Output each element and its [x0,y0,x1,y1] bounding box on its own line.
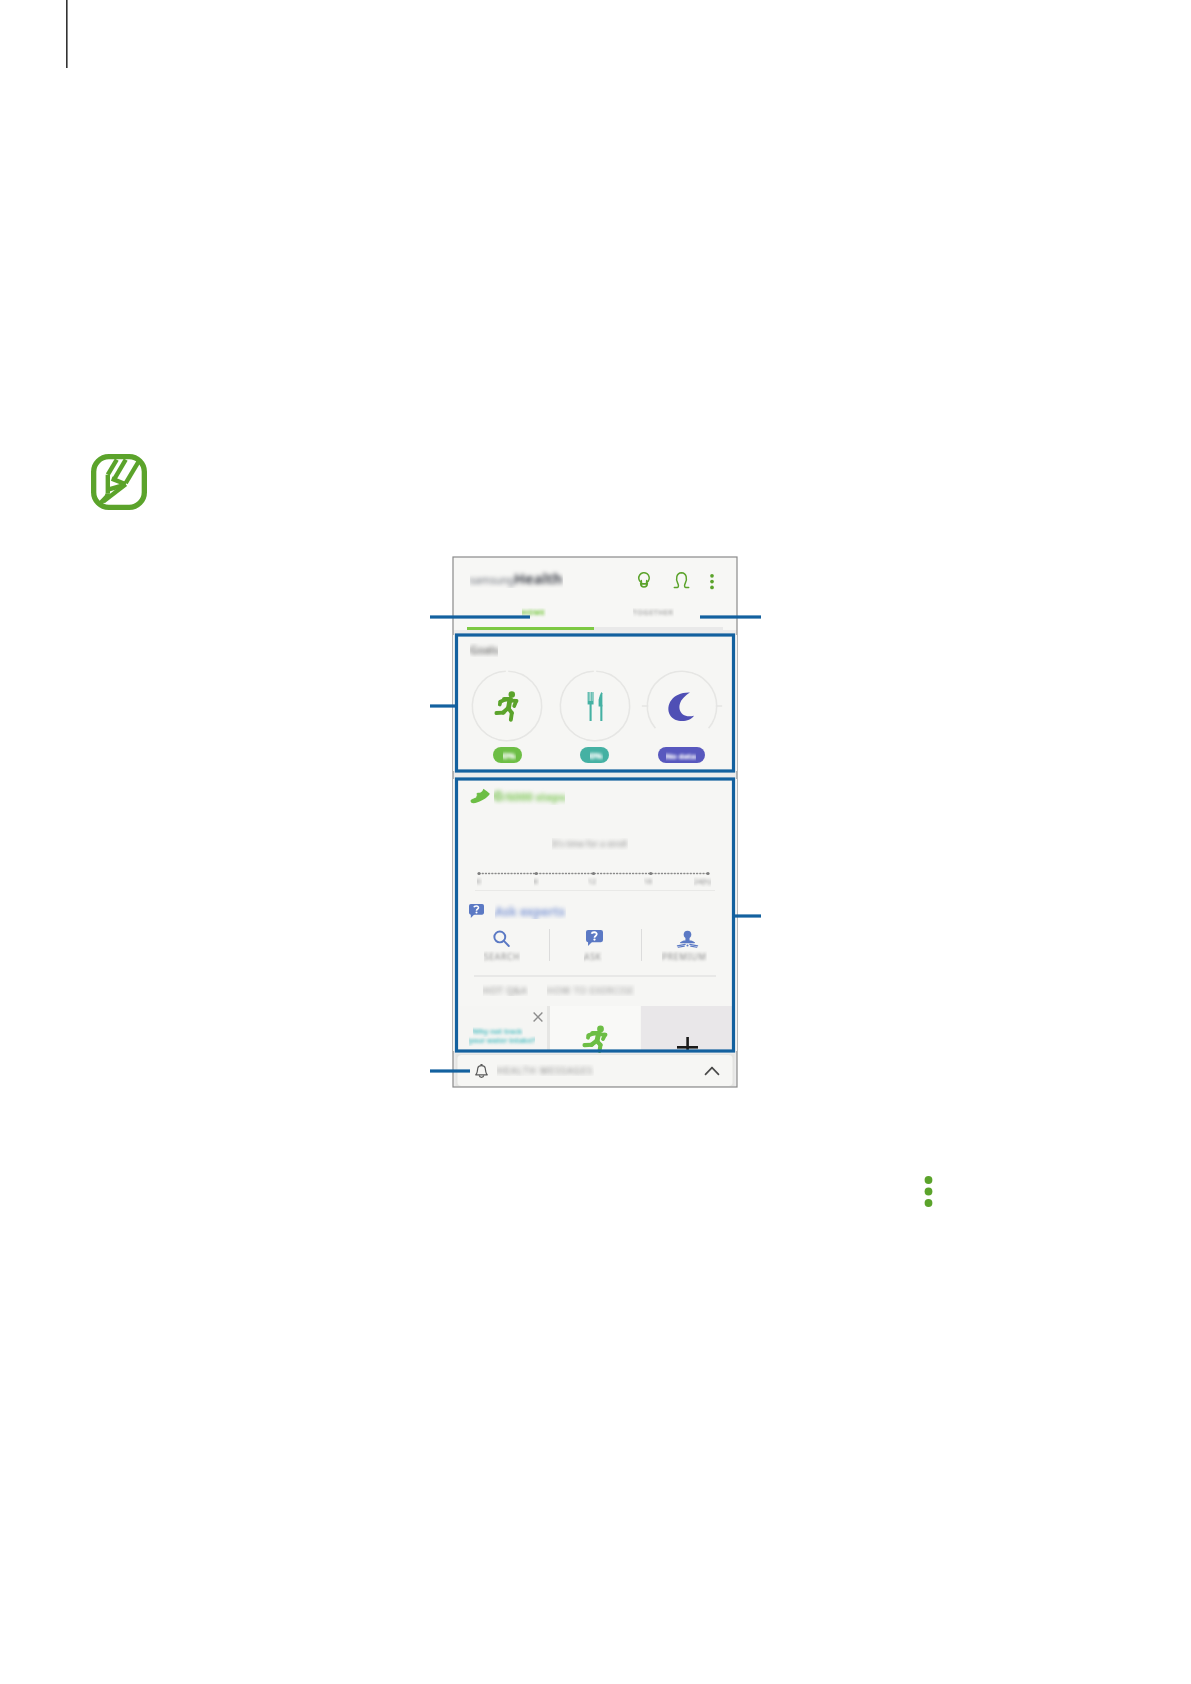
staticText: Why not track [473,1027,523,1037]
button[interactable]: Steps tracker [457,779,733,889]
button[interactable]: Feel more rested goal [647,671,717,763]
staticText: Health [514,568,563,588]
button[interactable]: Home tab [467,601,594,630]
staticText: HOME [522,608,546,618]
button[interactable]: Eat healthier goal [560,671,630,763]
staticText: 12 [588,877,597,887]
button[interactable]: Goals [457,635,733,771]
staticText: samsung [470,573,514,587]
button[interactable]: Add tracker [641,1006,733,1051]
button[interactable]: Tips [633,565,660,595]
staticText: 0% [590,750,603,762]
button[interactable]: Health messages [457,1054,733,1086]
staticText: 6 [534,877,539,887]
staticText: Ask experts [495,903,566,919]
staticText: ASK [584,951,602,963]
staticText: No data [666,751,696,761]
staticText: 0% [503,750,516,762]
staticText: HOT Q&A [483,984,528,996]
staticText: 0 [494,785,503,805]
button[interactable]: Ask [551,925,639,967]
staticText: /6000 steps [503,789,565,804]
staticText: 18 [644,877,653,887]
button[interactable]: Profile [667,565,696,595]
staticText: It's time for a stroll [552,838,628,850]
staticText: HEALTH MESSAGES [497,1064,594,1076]
staticText: Goals [470,643,498,657]
staticText: 24(h) [694,877,711,887]
button[interactable]: Exercise tracker [550,1006,640,1051]
staticText: your water intake? [469,1036,535,1046]
button[interactable]: Dismiss tip [527,1006,549,1028]
staticText: PREMIUM [662,951,707,963]
button[interactable]: Together tab [594,601,723,630]
staticText: 0 [477,877,482,887]
button[interactable]: More options [701,565,725,595]
staticText: TOGETHER [633,608,674,618]
button[interactable]: Search [467,925,549,967]
button[interactable]: Be more active goal [472,671,542,763]
staticText: SEARCH [484,951,520,963]
button[interactable]: Water intake tip [457,1006,547,1051]
button[interactable]: Hot Q&A [467,977,723,1003]
button[interactable]: Premium [643,925,727,967]
button[interactable]: Ask experts [457,895,733,925]
staticText: HOW TO EXERCISE [547,984,635,996]
